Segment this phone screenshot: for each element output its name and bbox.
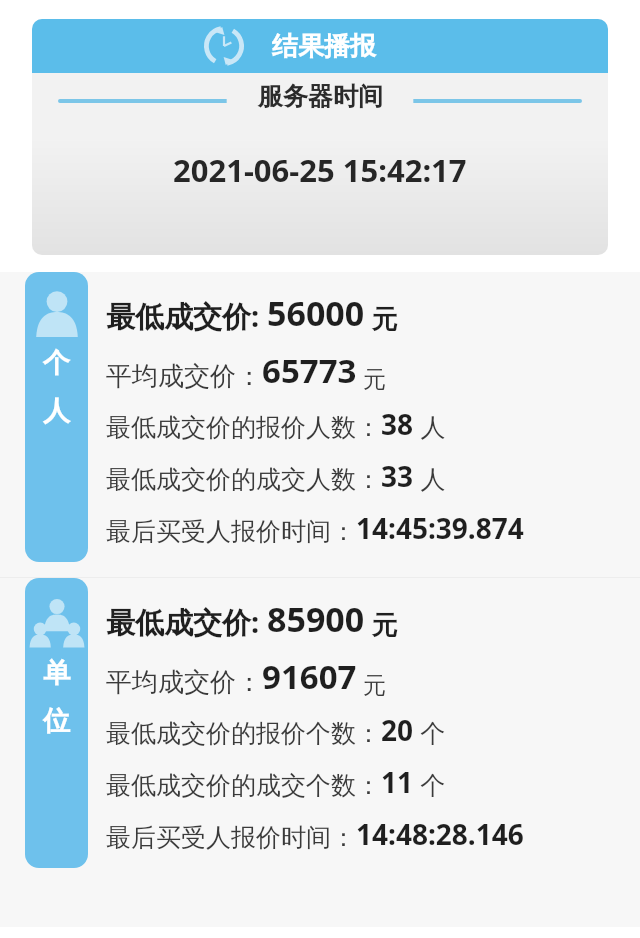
staticText: 元 bbox=[365, 300, 398, 336]
staticText: 最后买受人报价时间： bbox=[106, 516, 356, 547]
staticText: 平均成交价： bbox=[106, 666, 262, 699]
staticText: 11 bbox=[381, 763, 414, 801]
staticText: 个 bbox=[414, 767, 446, 801]
staticText: 56000 bbox=[267, 290, 365, 336]
staticText: 最低成交价的报价个数： bbox=[106, 718, 381, 749]
staticText: 最低成交价的成交人数： bbox=[106, 464, 381, 495]
staticText: 38 bbox=[381, 405, 414, 443]
button[interactable]: 单位 bbox=[25, 578, 88, 868]
staticText: 人 bbox=[414, 461, 446, 495]
button[interactable]: Refresh bbox=[32, 19, 608, 73]
staticText: 结果播报 bbox=[272, 30, 376, 63]
staticText: 33 bbox=[381, 457, 414, 495]
staticText: 最低成交价的成交个数： bbox=[106, 770, 381, 801]
staticText: 元 bbox=[365, 606, 398, 642]
staticText: 元 bbox=[357, 362, 386, 393]
staticText: 最低成交价: bbox=[106, 602, 267, 642]
other: Refresh bbox=[204, 26, 244, 66]
staticText: 个 bbox=[414, 715, 446, 749]
button[interactable]: 个人 bbox=[25, 272, 88, 562]
staticText: 91607 bbox=[262, 654, 357, 699]
staticText: 人 bbox=[414, 409, 446, 443]
staticText: 元 bbox=[357, 668, 386, 699]
staticText: 个 bbox=[43, 346, 70, 380]
staticText: 最后买受人报价时间： bbox=[106, 822, 356, 853]
staticText: 最低成交价的报价人数： bbox=[106, 412, 381, 443]
staticText: 单 bbox=[43, 656, 70, 690]
staticText: 85900 bbox=[267, 596, 365, 642]
staticText: 20 bbox=[381, 711, 414, 749]
staticText: 平均成交价： bbox=[106, 360, 262, 393]
staticText: 65773 bbox=[262, 348, 357, 393]
staticText: 最低成交价: bbox=[106, 296, 267, 336]
staticText: 14:48:28.146 bbox=[356, 815, 524, 853]
staticText: 服务器时间 bbox=[258, 81, 383, 112]
staticText: 人 bbox=[43, 394, 70, 428]
staticText: 位 bbox=[43, 704, 70, 738]
staticText: 2021-06-25 15:42:17 bbox=[173, 149, 467, 191]
staticText: 14:45:39.874 bbox=[356, 509, 524, 547]
